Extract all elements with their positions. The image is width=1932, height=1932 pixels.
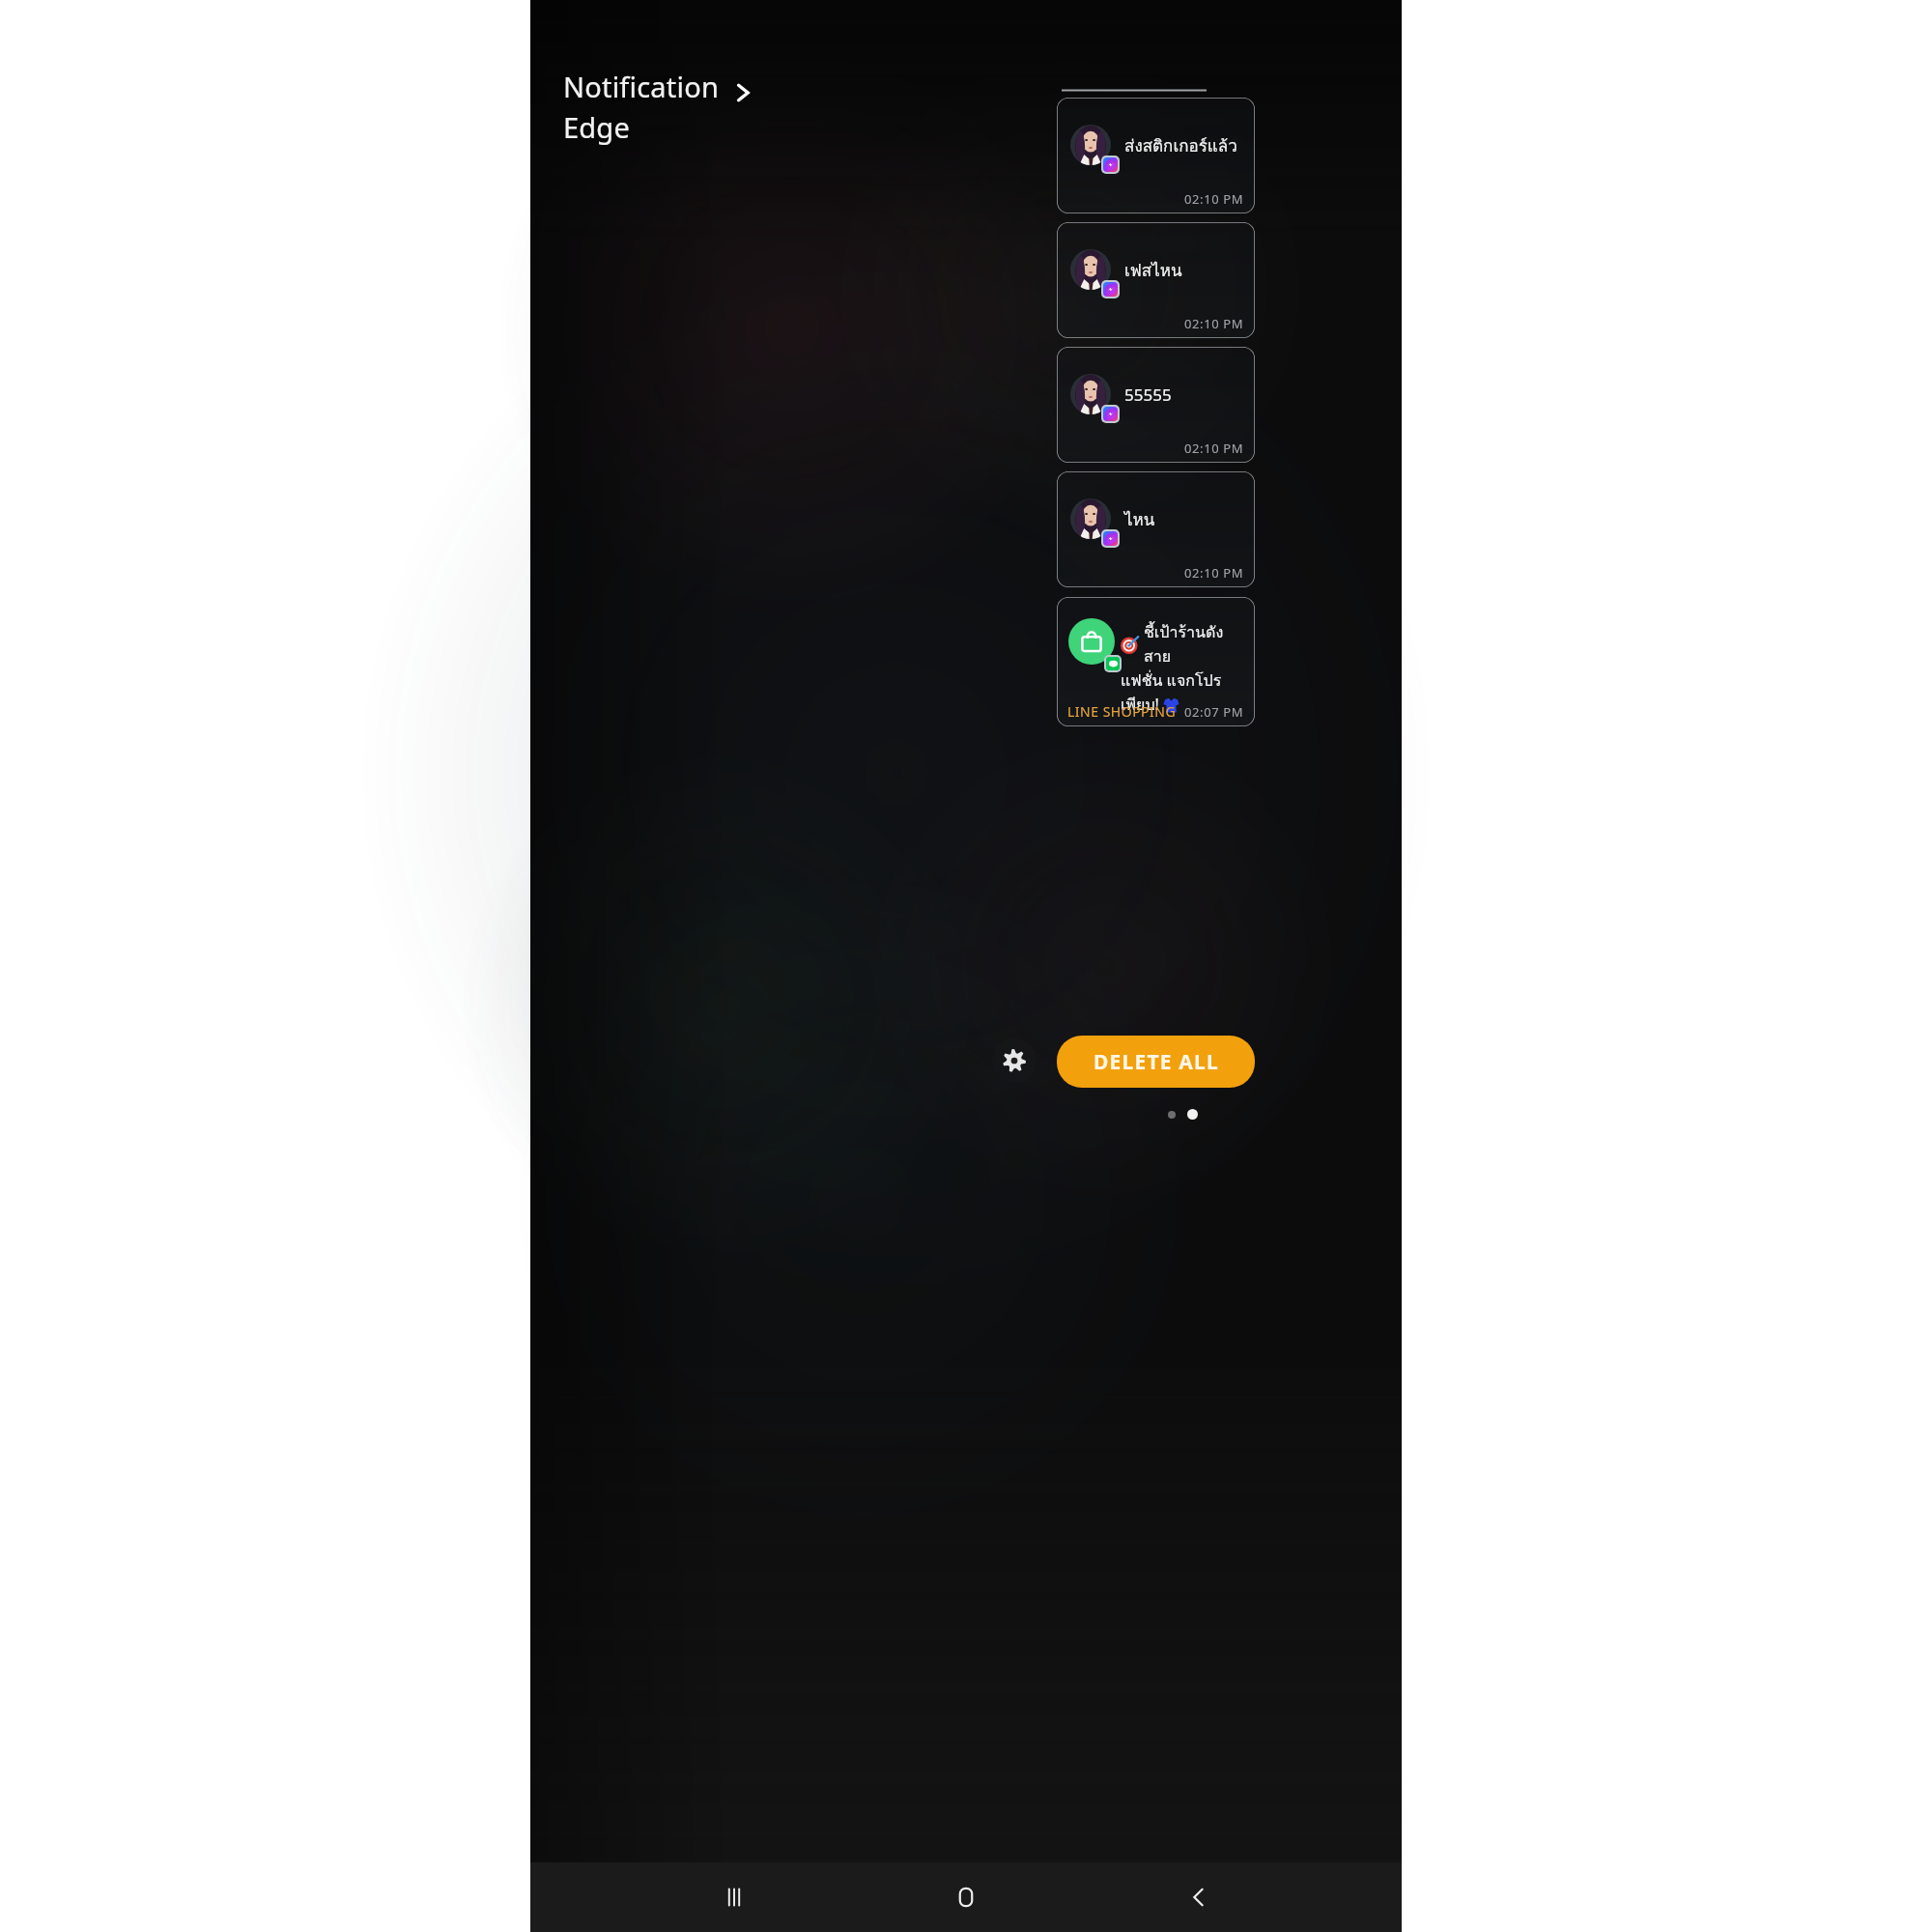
staticText: ชี้เป้าร้านดังสาย — [1144, 620, 1247, 668]
button[interactable]: Notification — [559, 66, 724, 148]
staticText: Notification — [563, 68, 720, 105]
staticText: 55555 — [1124, 384, 1172, 406]
staticText: 02:07 PM — [1184, 703, 1244, 721]
button[interactable]: Recent apps — [705, 1868, 763, 1926]
staticText: 02:10 PM — [1184, 315, 1244, 332]
staticText: 02:10 PM — [1184, 440, 1244, 457]
staticText: แฟชั่น แจกโปร — [1121, 668, 1222, 693]
staticText: ไหน — [1124, 506, 1155, 532]
button[interactable]: Open Notification Edge — [724, 73, 762, 112]
button[interactable]: 55555 — [1057, 347, 1255, 463]
staticText: 02:10 PM — [1184, 190, 1244, 208]
staticText: เพียบ! — [1121, 693, 1159, 717]
staticText: เฟสไหน — [1124, 257, 1182, 283]
button[interactable]: Settings — [992, 1038, 1037, 1083]
staticText: ส่งสติกเกอร์แล้ว — [1124, 132, 1237, 158]
button[interactable]: ไหน — [1057, 471, 1255, 587]
button[interactable]: ชี้เป้าร้านดังสาย — [1057, 597, 1255, 726]
button[interactable]: DELETE ALL — [1057, 1036, 1255, 1088]
staticText: DELETE ALL — [1094, 1048, 1219, 1076]
button[interactable]: Home — [937, 1868, 995, 1926]
staticText: LINE SHOPPING — [1067, 702, 1177, 721]
button[interactable]: เฟสไหน — [1057, 222, 1255, 338]
button[interactable]: Back — [1170, 1868, 1228, 1926]
staticText: Edge — [563, 108, 630, 146]
button[interactable]: ส่งสติกเกอร์แล้ว — [1057, 98, 1255, 213]
staticText: 02:10 PM — [1184, 564, 1244, 582]
